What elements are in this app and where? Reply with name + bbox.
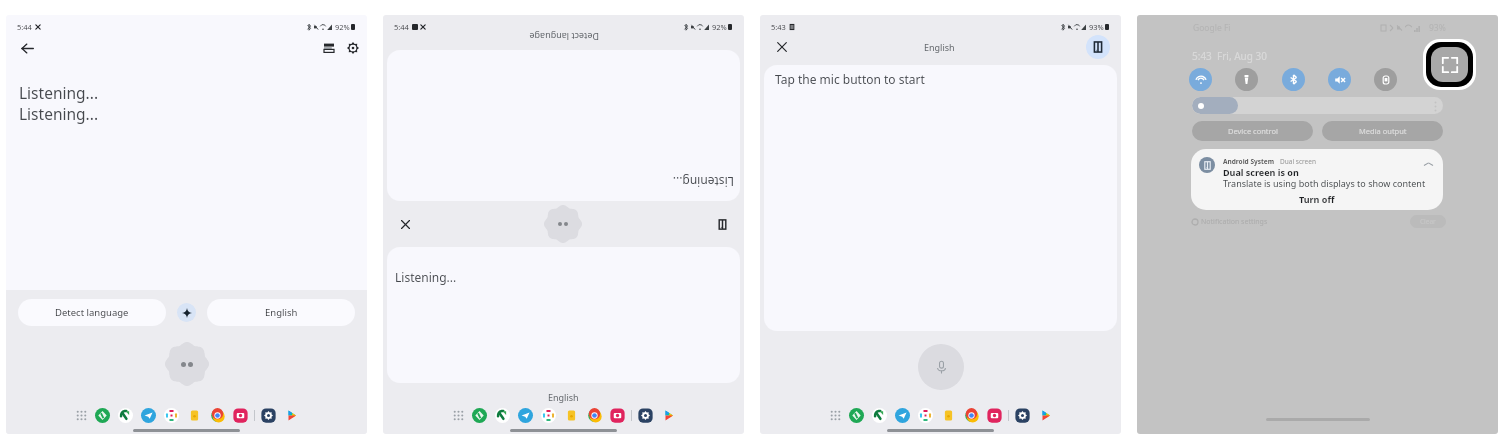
button[interactable]: Screenshot (1431, 47, 1468, 82)
staticText: 93% (1429, 22, 1446, 34)
button[interactable]: App (137, 404, 160, 427)
staticText: Dual screen (1280, 157, 1316, 166)
button[interactable]: Android System (1191, 149, 1443, 210)
button[interactable]: Detect language (18, 299, 166, 326)
button[interactable]: Swap languages (177, 303, 196, 322)
button[interactable]: Close (771, 36, 793, 58)
button[interactable]: App (280, 404, 303, 427)
staticText: Clear (1420, 217, 1436, 226)
staticText: Android System (1223, 157, 1275, 166)
button[interactable]: App (514, 404, 537, 427)
button[interactable]: App (114, 404, 137, 427)
button[interactable]: App (91, 404, 114, 427)
button[interactable]: App (206, 404, 229, 427)
button[interactable]: App (634, 404, 657, 427)
staticText: Notification settings (1201, 217, 1268, 227)
staticText: English (924, 41, 955, 53)
button[interactable]: App (937, 404, 960, 427)
staticText: Device control (1228, 126, 1278, 136)
staticText: Media output (1359, 126, 1407, 136)
button[interactable]: App (845, 404, 868, 427)
button[interactable]: Back (16, 37, 38, 59)
button[interactable]: App (583, 404, 606, 427)
button[interactable]: Quick setting (1328, 68, 1351, 91)
button[interactable]: Settings (342, 37, 364, 59)
button[interactable]: Microphone (918, 344, 964, 390)
staticText: Google Fi (1193, 22, 1231, 34)
button[interactable]: Quick setting (1282, 68, 1305, 91)
staticText: 5:43 (771, 22, 786, 32)
staticText: Translate is using both displays to show… (1223, 177, 1426, 189)
button[interactable]: App (229, 404, 252, 427)
button[interactable]: Dual screen (712, 214, 732, 234)
staticText: English (548, 391, 579, 403)
button[interactable]: English (207, 299, 355, 326)
button[interactable]: All apps (824, 404, 847, 427)
button[interactable]: App (491, 404, 514, 427)
button[interactable]: Media output (1322, 121, 1443, 141)
staticText: 92% (335, 22, 350, 32)
staticText: 5:44 (394, 22, 409, 32)
button[interactable]: Quick setting (1189, 68, 1212, 91)
button[interactable]: App (914, 404, 937, 427)
button[interactable]: App (1034, 404, 1057, 427)
button[interactable]: App (868, 404, 891, 427)
button[interactable]: App (960, 404, 983, 427)
staticText: Listening... (19, 82, 99, 103)
button[interactable]: App (257, 404, 280, 427)
button[interactable]: Quick setting (1374, 68, 1397, 91)
button[interactable]: App (468, 404, 491, 427)
button[interactable]: All apps (447, 404, 470, 427)
staticText: 93% (1089, 22, 1104, 32)
staticText: Dual screen is on (1223, 166, 1299, 178)
staticText: Detect language (529, 31, 599, 43)
button[interactable]: App (537, 404, 560, 427)
staticText: Listening... (672, 174, 734, 190)
button[interactable]: App (606, 404, 629, 427)
staticText: 5:44 (17, 22, 32, 32)
staticText: Listening... (19, 103, 99, 124)
staticText: Listening... (395, 269, 457, 285)
button[interactable]: All apps (70, 404, 93, 427)
staticText: English (265, 306, 298, 319)
button[interactable]: Transcript (318, 37, 340, 59)
button[interactable]: Dual screen (1086, 35, 1110, 59)
button[interactable]: App (983, 404, 1006, 427)
button[interactable]: App (183, 404, 206, 427)
button[interactable]: App (657, 404, 680, 427)
staticText: Turn off (1299, 193, 1335, 205)
button[interactable]: Close (395, 214, 415, 234)
button[interactable]: Listening (165, 342, 209, 386)
staticText: 5:43 Fri, Aug 30 (1192, 49, 1267, 63)
button[interactable]: App (160, 404, 183, 427)
staticText: Detect language (55, 306, 129, 319)
button[interactable]: App (1011, 404, 1034, 427)
staticText: 92% (712, 22, 727, 32)
button[interactable]: App (891, 404, 914, 427)
button[interactable]: Listening (544, 205, 582, 243)
staticText: Tap the mic button to start (775, 71, 925, 87)
button[interactable]: Device control (1192, 121, 1313, 141)
button[interactable]: Quick setting (1235, 68, 1258, 91)
button[interactable]: App (560, 404, 583, 427)
